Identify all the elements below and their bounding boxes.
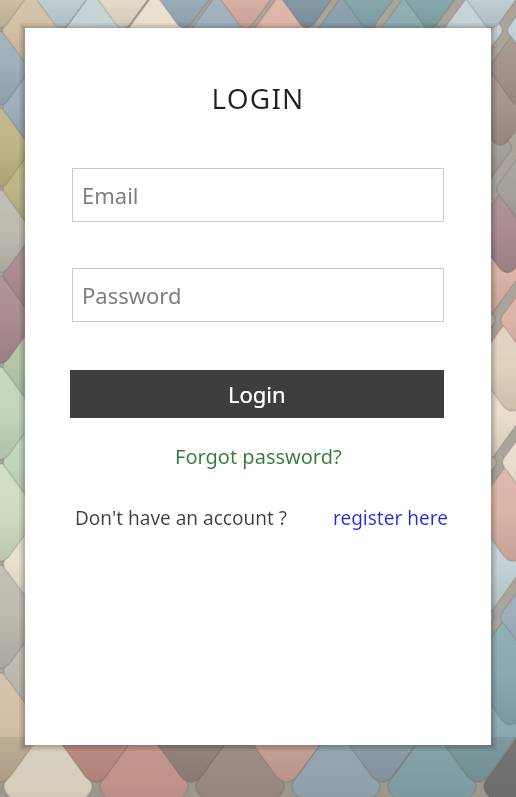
staticText: register here [333,505,448,531]
button[interactable]: register here [333,505,448,531]
staticText: Email [82,180,139,210]
button[interactable]: Email [72,168,444,222]
staticText: Forgot password? [175,443,342,470]
staticText: Login [228,379,286,409]
button[interactable]: Password [72,268,444,322]
staticText: Password [82,280,182,310]
button[interactable]: Forgot password? [175,443,342,470]
staticText: Don't have an account ? [75,505,287,531]
button[interactable]: Login [70,370,444,418]
staticText: LOGIN [0,79,516,117]
